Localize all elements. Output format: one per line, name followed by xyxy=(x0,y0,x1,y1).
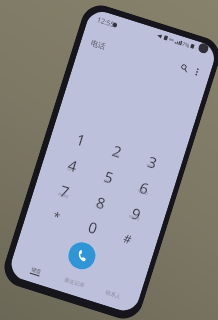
button[interactable]: # xyxy=(108,220,148,254)
staticText: 67% xyxy=(178,39,191,49)
button[interactable]: 6 xyxy=(124,169,164,203)
staticText: 3 xyxy=(145,151,160,173)
staticText: JKL xyxy=(103,178,111,185)
staticText: 键盘 xyxy=(30,266,43,276)
button[interactable]: 7 xyxy=(45,172,84,207)
staticText: 5 xyxy=(102,166,116,188)
staticText: 0 xyxy=(86,216,100,238)
staticText: * xyxy=(51,207,62,225)
staticText: PQRS xyxy=(57,191,69,200)
button[interactable]: 最近记录 xyxy=(54,271,94,295)
button[interactable]: 3 xyxy=(132,143,172,178)
button[interactable]: 键盘 xyxy=(15,259,56,283)
button[interactable]: 4 xyxy=(53,147,93,181)
staticText: WXYZ xyxy=(127,214,141,223)
button[interactable]: 9 xyxy=(116,195,156,229)
button[interactable]: 2 xyxy=(97,132,137,166)
staticText: GHI xyxy=(66,166,75,174)
staticText: 12:55 xyxy=(95,15,116,30)
staticText: 8 xyxy=(93,192,108,213)
staticText: MNO xyxy=(137,188,149,197)
staticText: 4 xyxy=(65,154,80,176)
staticText: + xyxy=(89,229,94,235)
button[interactable]: Search xyxy=(175,58,193,76)
staticText: 1 xyxy=(73,129,88,150)
button[interactable]: 0 xyxy=(73,209,113,243)
staticText: DEF xyxy=(146,163,155,171)
staticText: 6 xyxy=(137,177,151,199)
staticText: # xyxy=(122,229,134,247)
staticText: 9 xyxy=(129,203,143,224)
button[interactable]: 1 xyxy=(61,121,101,155)
staticText: TUV xyxy=(94,203,103,211)
button[interactable]: More options xyxy=(188,63,206,80)
button[interactable]: 联系人 xyxy=(93,283,133,308)
button[interactable]: Call xyxy=(65,239,99,273)
staticText: 电话 xyxy=(90,38,107,51)
button[interactable]: * xyxy=(37,197,77,231)
staticText: 最近记录 xyxy=(63,276,85,289)
staticText: 联系人 xyxy=(104,289,122,301)
button[interactable]: 8 xyxy=(81,184,121,218)
staticText: 7 xyxy=(57,180,72,202)
staticText: ABC xyxy=(110,152,121,160)
staticText: 2 xyxy=(110,140,124,162)
button[interactable]: 5 xyxy=(89,158,129,192)
